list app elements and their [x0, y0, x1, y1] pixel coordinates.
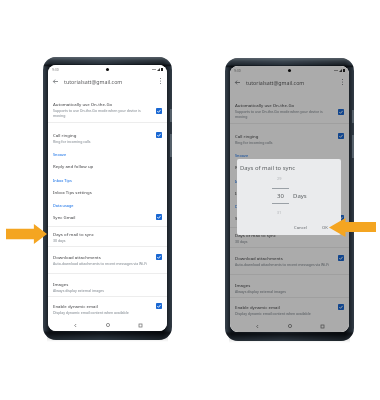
button[interactable]: Toggle setting	[156, 108, 162, 114]
staticText: Inbox Tips	[235, 179, 254, 184]
staticText: Always display external images	[53, 288, 104, 293]
staticText: Reply and follow up	[53, 163, 94, 169]
staticText: Days	[293, 192, 307, 200]
staticText: Auto-download attachments to recent mess…	[53, 261, 148, 266]
button[interactable]: Reply and follow up	[48, 159, 167, 174]
button[interactable]: Images	[48, 277, 167, 299]
staticText: 31	[277, 210, 282, 215]
staticText: Days of mail to sync	[240, 164, 295, 172]
staticText: OK	[322, 225, 328, 231]
button[interactable]: Inbox Tips settings	[48, 185, 167, 199]
button[interactable]: Toggle setting	[156, 254, 162, 260]
button[interactable]: Toggle setting	[338, 215, 344, 221]
button[interactable]: Call ringing	[48, 128, 167, 148]
button[interactable]: Toggle setting	[338, 109, 344, 115]
button[interactable]: Days of mail to sync	[230, 228, 349, 251]
staticText: Snooze	[235, 153, 249, 158]
staticText: Inbox Tips settings	[53, 189, 92, 195]
staticText: Data usage	[235, 204, 256, 209]
staticText: Cancel	[294, 225, 308, 231]
button[interactable]: Days of mail to sync	[48, 227, 167, 250]
staticText: Images	[53, 281, 69, 287]
button[interactable]: Home	[102, 319, 114, 331]
staticText: Call ringing	[235, 133, 259, 139]
staticText: Download attachments	[53, 254, 101, 260]
staticText: Always display external images	[235, 289, 286, 294]
button[interactable]: Automatically use On-the-Go	[230, 98, 349, 129]
button[interactable]: Back	[231, 76, 243, 88]
staticText: Ring for incoming calls	[235, 140, 273, 145]
staticText: Days of mail to sync	[53, 231, 94, 237]
button[interactable]: Sync Gmail	[48, 210, 167, 227]
staticText: Inbox Tips settings	[235, 190, 274, 196]
button[interactable]: More options	[336, 76, 348, 88]
staticText: Sync Gmail	[235, 215, 258, 221]
staticText: tutorialsatt@gmail.com	[246, 79, 305, 86]
staticText: Sync Gmail	[53, 214, 76, 220]
button[interactable]: Automatically use On-the-Go	[48, 97, 167, 128]
staticText: tutorialsatt@gmail.com	[64, 78, 123, 85]
staticText: 9:30	[234, 68, 241, 73]
staticText: Auto-download attachments to recent mess…	[235, 262, 330, 267]
button[interactable]: Toggle setting	[338, 133, 344, 139]
staticText: Display dynamic email content when avail…	[235, 311, 311, 316]
button[interactable]: Images	[230, 278, 349, 300]
staticText: 30 days	[53, 238, 66, 243]
button[interactable]: Back	[49, 75, 61, 87]
staticText: Automatically use On-the-Go	[235, 102, 295, 108]
staticText: Images	[235, 282, 251, 288]
staticText: Call ringing	[53, 132, 77, 138]
button[interactable]: Back	[69, 319, 81, 331]
button[interactable]: Sync Gmail	[230, 211, 349, 228]
staticText: Enable dynamic email	[53, 303, 98, 309]
button[interactable]: Call ringing	[230, 129, 349, 149]
button[interactable]: Toggle setting	[338, 255, 344, 261]
staticText: 30	[277, 192, 284, 200]
button[interactable]: Recent apps	[316, 320, 328, 332]
staticText: 9:30	[52, 67, 59, 72]
button[interactable]: More options	[154, 75, 166, 87]
staticText: Reply and follow up	[235, 164, 276, 170]
button[interactable]: OK	[320, 223, 330, 233]
staticText: Supports to use On-the-Go mode when your…	[53, 108, 151, 118]
button[interactable]: Enable dynamic email	[230, 300, 349, 320]
button[interactable]: Toggle setting	[156, 303, 162, 309]
button[interactable]: Inbox Tips settings	[230, 186, 349, 200]
staticText: Download attachments	[235, 255, 283, 261]
staticText: Inbox Tips	[53, 178, 72, 183]
button[interactable]: Recent apps	[134, 319, 146, 331]
staticText: Display dynamic email content when avail…	[53, 310, 129, 315]
staticText: Data usage	[53, 203, 74, 208]
button[interactable]: Toggle setting	[156, 132, 162, 138]
button[interactable]: Toggle setting	[156, 214, 162, 220]
staticText: Supports to use On-the-Go mode when your…	[235, 109, 333, 119]
button[interactable]: Back	[251, 320, 263, 332]
button[interactable]: Enable dynamic email	[48, 299, 167, 319]
staticText: 30 days	[235, 239, 248, 244]
staticText: 29	[277, 176, 282, 181]
button[interactable]: Reply and follow up	[230, 160, 349, 175]
staticText: Snooze	[53, 152, 67, 157]
staticText: Enable dynamic email	[235, 304, 280, 310]
button[interactable]: Download attachments	[48, 250, 167, 277]
staticText: Automatically use On-the-Go	[53, 101, 113, 107]
button[interactable]: Toggle setting	[338, 304, 344, 310]
button[interactable]: Download attachments	[230, 251, 349, 278]
button[interactable]: Cancel	[292, 223, 310, 233]
staticText: Ring for incoming calls	[53, 139, 91, 144]
button[interactable]: Home	[284, 320, 296, 332]
staticText: Days of mail to sync	[235, 232, 276, 238]
